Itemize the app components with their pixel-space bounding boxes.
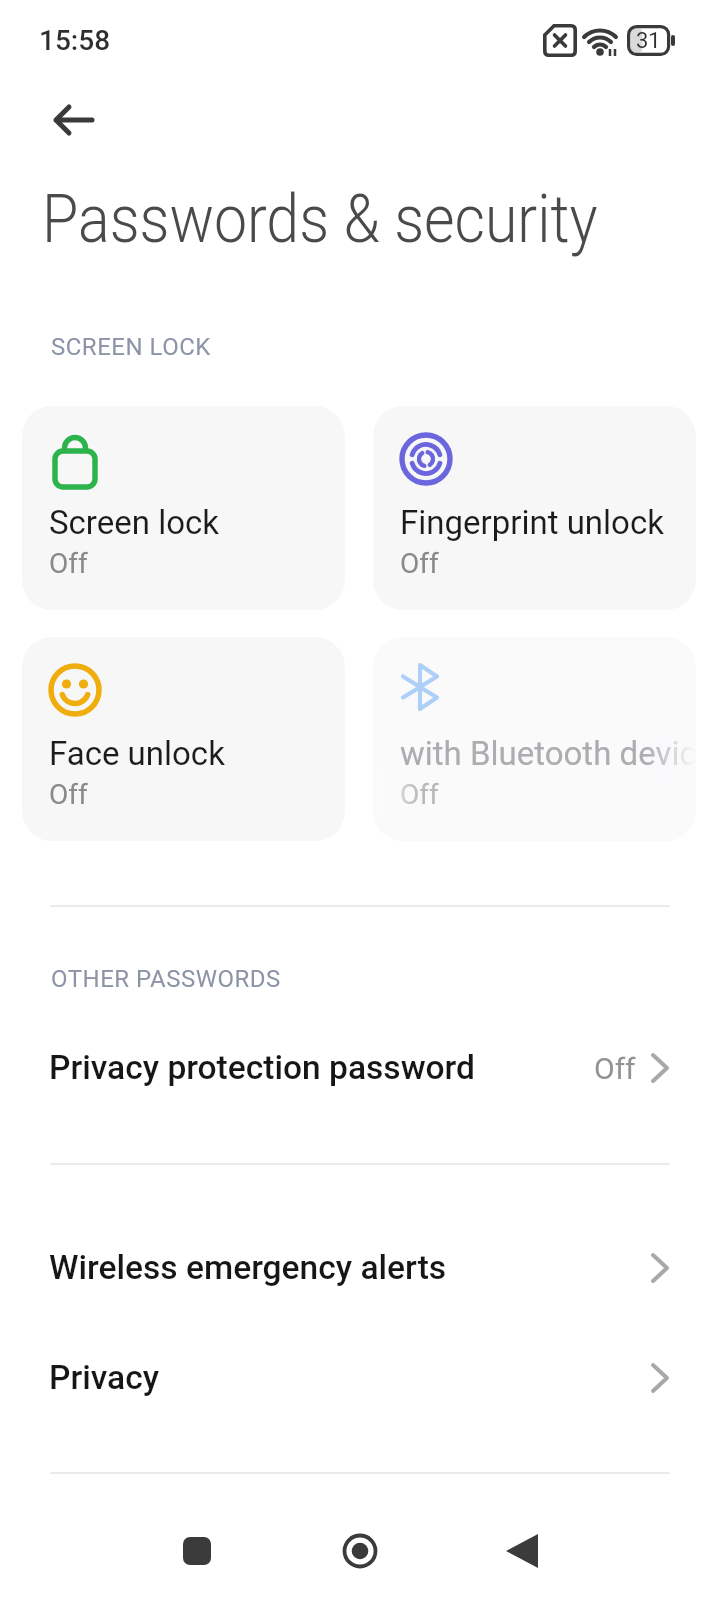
button[interactable]: Fingerprint unlock xyxy=(373,406,696,610)
staticText: Off xyxy=(594,1051,636,1086)
staticText: SCREEN LOCK xyxy=(51,333,211,361)
staticText: Wireless emergency alerts xyxy=(49,1248,447,1287)
button[interactable] xyxy=(160,1505,240,1600)
staticText: 31 xyxy=(636,28,661,54)
button[interactable] xyxy=(40,94,104,146)
button[interactable]: Privacy protection password xyxy=(0,1013,720,1123)
button[interactable]: Wireless emergency alerts xyxy=(0,1213,720,1323)
staticText: Off xyxy=(400,778,439,811)
staticText: Privacy xyxy=(49,1358,160,1397)
staticText: Face unlock xyxy=(49,734,225,773)
staticText: 15:58 xyxy=(39,24,111,57)
staticText: Fingerprint unlock xyxy=(400,503,664,542)
staticText: with Bluetooth device xyxy=(400,734,696,773)
staticText: Passwords & security xyxy=(42,179,598,258)
button[interactable]: Face unlock xyxy=(22,637,345,841)
button[interactable] xyxy=(320,1505,400,1600)
staticText: OTHER PASSWORDS xyxy=(51,965,281,993)
staticText: Screen lock xyxy=(49,503,219,542)
staticText: Off xyxy=(49,778,88,811)
staticText: Off xyxy=(400,547,439,580)
button[interactable] xyxy=(481,1505,561,1600)
staticText: Off xyxy=(49,547,88,580)
staticText: Privacy protection password xyxy=(49,1048,476,1087)
button[interactable]: with Bluetooth device xyxy=(373,637,696,841)
button[interactable]: Screen lock xyxy=(22,406,345,610)
button[interactable]: Privacy xyxy=(0,1323,720,1433)
